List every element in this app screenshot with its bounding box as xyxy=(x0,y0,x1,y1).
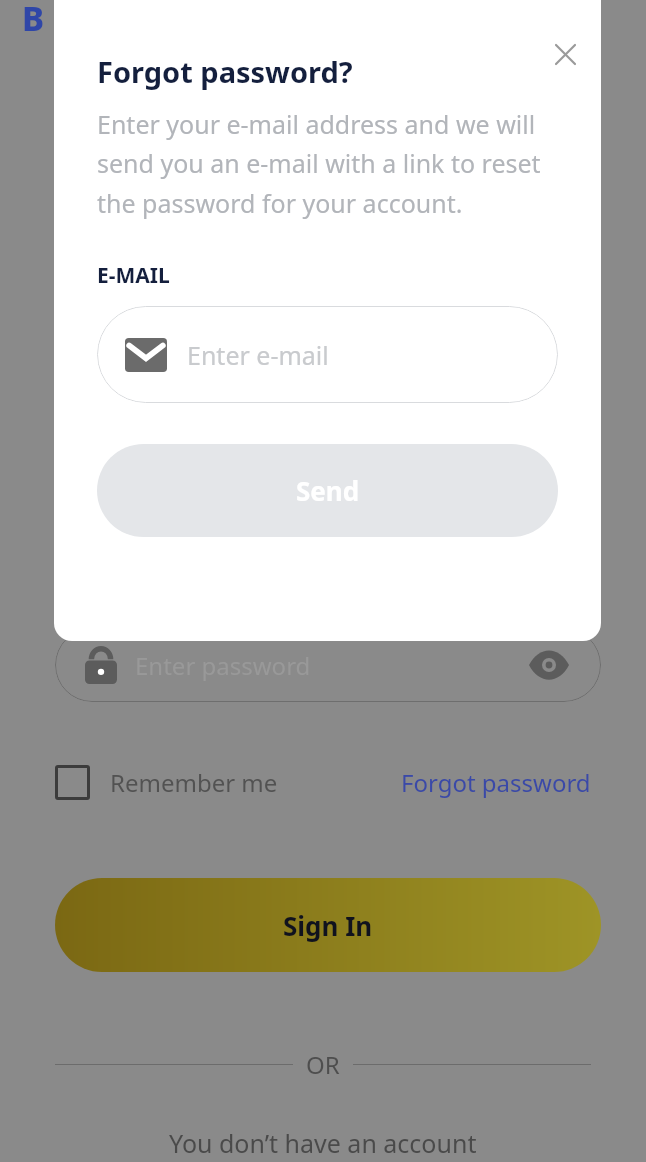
button[interactable]: Close xyxy=(543,32,587,76)
staticText: E-MAIL xyxy=(97,261,170,290)
staticText: Enter password xyxy=(135,649,311,682)
staticText: Sign In xyxy=(283,908,373,943)
button[interactable]: Show password xyxy=(527,643,571,687)
staticText: B xyxy=(22,0,45,41)
button[interactable]: Sign In xyxy=(55,878,601,972)
staticText: Enter your e-mail address and we will se… xyxy=(97,107,558,221)
button[interactable]: Send xyxy=(97,444,558,537)
staticText: Forgot password xyxy=(401,766,591,799)
staticText: Send xyxy=(296,473,360,508)
button[interactable]: Remember me xyxy=(55,765,278,800)
button[interactable]: Forgot password xyxy=(401,766,591,799)
staticText: Forgot password? xyxy=(97,52,353,91)
button[interactable]: Enter password xyxy=(55,628,601,702)
staticText: Remember me xyxy=(110,766,278,799)
staticText: You don’t have an account xyxy=(169,1126,477,1160)
staticText: Enter e-mail xyxy=(187,338,329,372)
button[interactable]: Enter e-mail xyxy=(97,306,558,403)
staticText: OR xyxy=(306,1048,340,1081)
